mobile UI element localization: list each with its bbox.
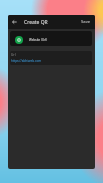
staticText: Url	[11, 53, 16, 57]
staticText: https://abhiweb.com	[11, 59, 42, 63]
button[interactable]: Back	[8, 15, 20, 29]
button[interactable]: Website (Url)	[10, 31, 92, 46]
staticText: Create QR	[24, 19, 48, 26]
staticText: Website (Url)	[29, 38, 48, 42]
button[interactable]: Save	[77, 16, 95, 28]
button[interactable]: Url	[10, 51, 92, 65]
staticText: Save	[81, 19, 91, 25]
